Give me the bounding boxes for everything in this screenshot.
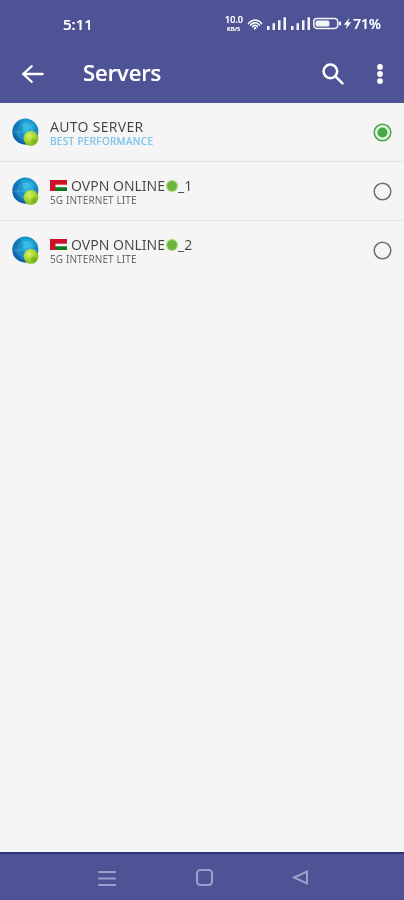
button[interactable]: Recents xyxy=(83,854,131,900)
staticText: _2 xyxy=(178,235,193,254)
staticText: BEST PERFORMANCE xyxy=(50,134,154,148)
button[interactable]: More options xyxy=(361,55,399,93)
button[interactable]: Selected server xyxy=(364,114,400,150)
staticText: _1 xyxy=(178,176,193,195)
staticText: KB/S xyxy=(227,25,241,33)
button[interactable]: OVPN ONLINE xyxy=(0,221,404,279)
staticText: 5G INTERNET LITE xyxy=(50,193,137,207)
staticText: OVPN ONLINE xyxy=(71,176,166,195)
button[interactable]: Search xyxy=(312,53,354,95)
button[interactable]: Back xyxy=(276,854,324,900)
button[interactable]: AUTO SERVER xyxy=(0,103,404,161)
staticText: AUTO SERVER xyxy=(50,117,144,136)
staticText: 71% xyxy=(353,14,381,33)
button[interactable]: Back xyxy=(12,54,52,94)
button[interactable]: Select server xyxy=(364,232,400,268)
staticText: 5:11 xyxy=(63,14,93,34)
staticText: 5G INTERNET LITE xyxy=(50,252,137,266)
button[interactable]: Select server xyxy=(364,173,400,209)
staticText: OVPN ONLINE xyxy=(71,235,166,254)
staticText: 10.0 xyxy=(225,13,243,25)
button[interactable]: Home xyxy=(180,854,228,900)
staticText: Servers xyxy=(83,57,162,87)
button[interactable]: OVPN ONLINE xyxy=(0,162,404,220)
